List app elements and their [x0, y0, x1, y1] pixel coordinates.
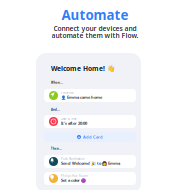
button[interactable]: Date & Time: [44, 115, 136, 128]
staticText: Connect your devices and: [53, 24, 136, 33]
button[interactable]: Push Notification: [44, 155, 136, 168]
staticText: Presence: [61, 91, 74, 95]
staticText: Set a color 🟣: [61, 178, 86, 183]
staticText: Send Welcome! 🎉 to 👩 Emma: [61, 161, 120, 166]
staticText: Automate: [61, 6, 128, 24]
staticText: Then...: [51, 147, 62, 150]
staticText: It's after 20:00: [61, 121, 87, 126]
button[interactable]: Add Card: [44, 132, 136, 142]
staticText: Add Card: [83, 134, 103, 140]
staticText: Welcome Home! 👋: [51, 64, 115, 73]
staticText: Date & Time: [61, 117, 77, 121]
staticText: automate them with Flow.: [51, 31, 138, 40]
staticText: 👤 Emma came home: [61, 95, 102, 100]
button[interactable]: Philips Hue Room: [44, 172, 136, 185]
staticText: Push Notification: [61, 157, 85, 161]
staticText: When...: [51, 81, 63, 84]
staticText: Philips Hue Room: [61, 174, 87, 178]
button[interactable]: Presence: [44, 89, 136, 102]
staticText: And...: [51, 108, 60, 111]
